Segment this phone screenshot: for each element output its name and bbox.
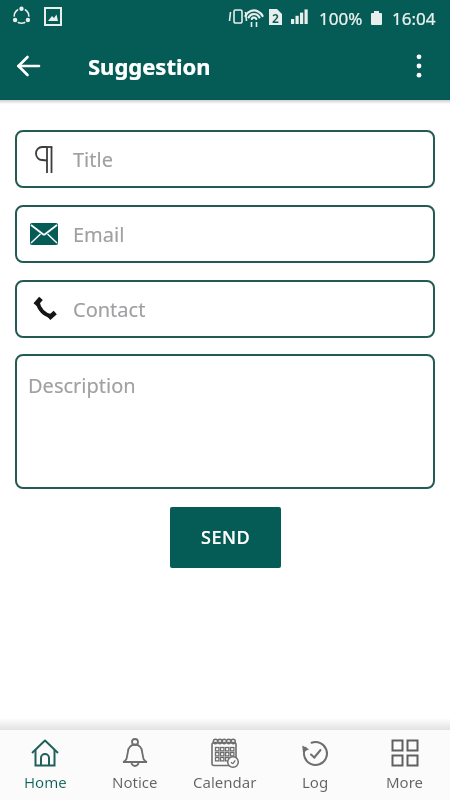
button[interactable]: More xyxy=(360,730,450,800)
staticText: Description xyxy=(28,372,136,399)
staticText: 100% xyxy=(319,7,363,30)
button[interactable]: Calendar xyxy=(180,730,270,800)
button[interactable]: Log xyxy=(270,730,360,800)
button[interactable]: Notice xyxy=(90,730,180,800)
staticText: Notice xyxy=(112,772,158,792)
staticText: Suggestion xyxy=(88,51,211,81)
staticText: More xyxy=(386,772,424,792)
button[interactable]: Contact xyxy=(15,280,435,338)
staticText: 2 xyxy=(272,10,279,26)
staticText: Email xyxy=(73,221,125,248)
button[interactable] xyxy=(12,49,46,83)
staticText: Contact xyxy=(73,296,146,323)
button[interactable]: Email xyxy=(15,205,435,263)
staticText: Title xyxy=(73,146,113,173)
button[interactable]: Description xyxy=(15,354,435,489)
staticText: 16:04 xyxy=(392,7,436,30)
staticText: Calendar xyxy=(193,772,257,792)
button[interactable]: Home xyxy=(0,730,90,800)
button[interactable]: SEND xyxy=(170,507,281,568)
staticText: SEND xyxy=(201,525,251,550)
button[interactable] xyxy=(404,51,434,81)
staticText: Home xyxy=(24,772,67,792)
button[interactable]: Title xyxy=(15,130,435,188)
staticText: Log xyxy=(302,772,329,792)
